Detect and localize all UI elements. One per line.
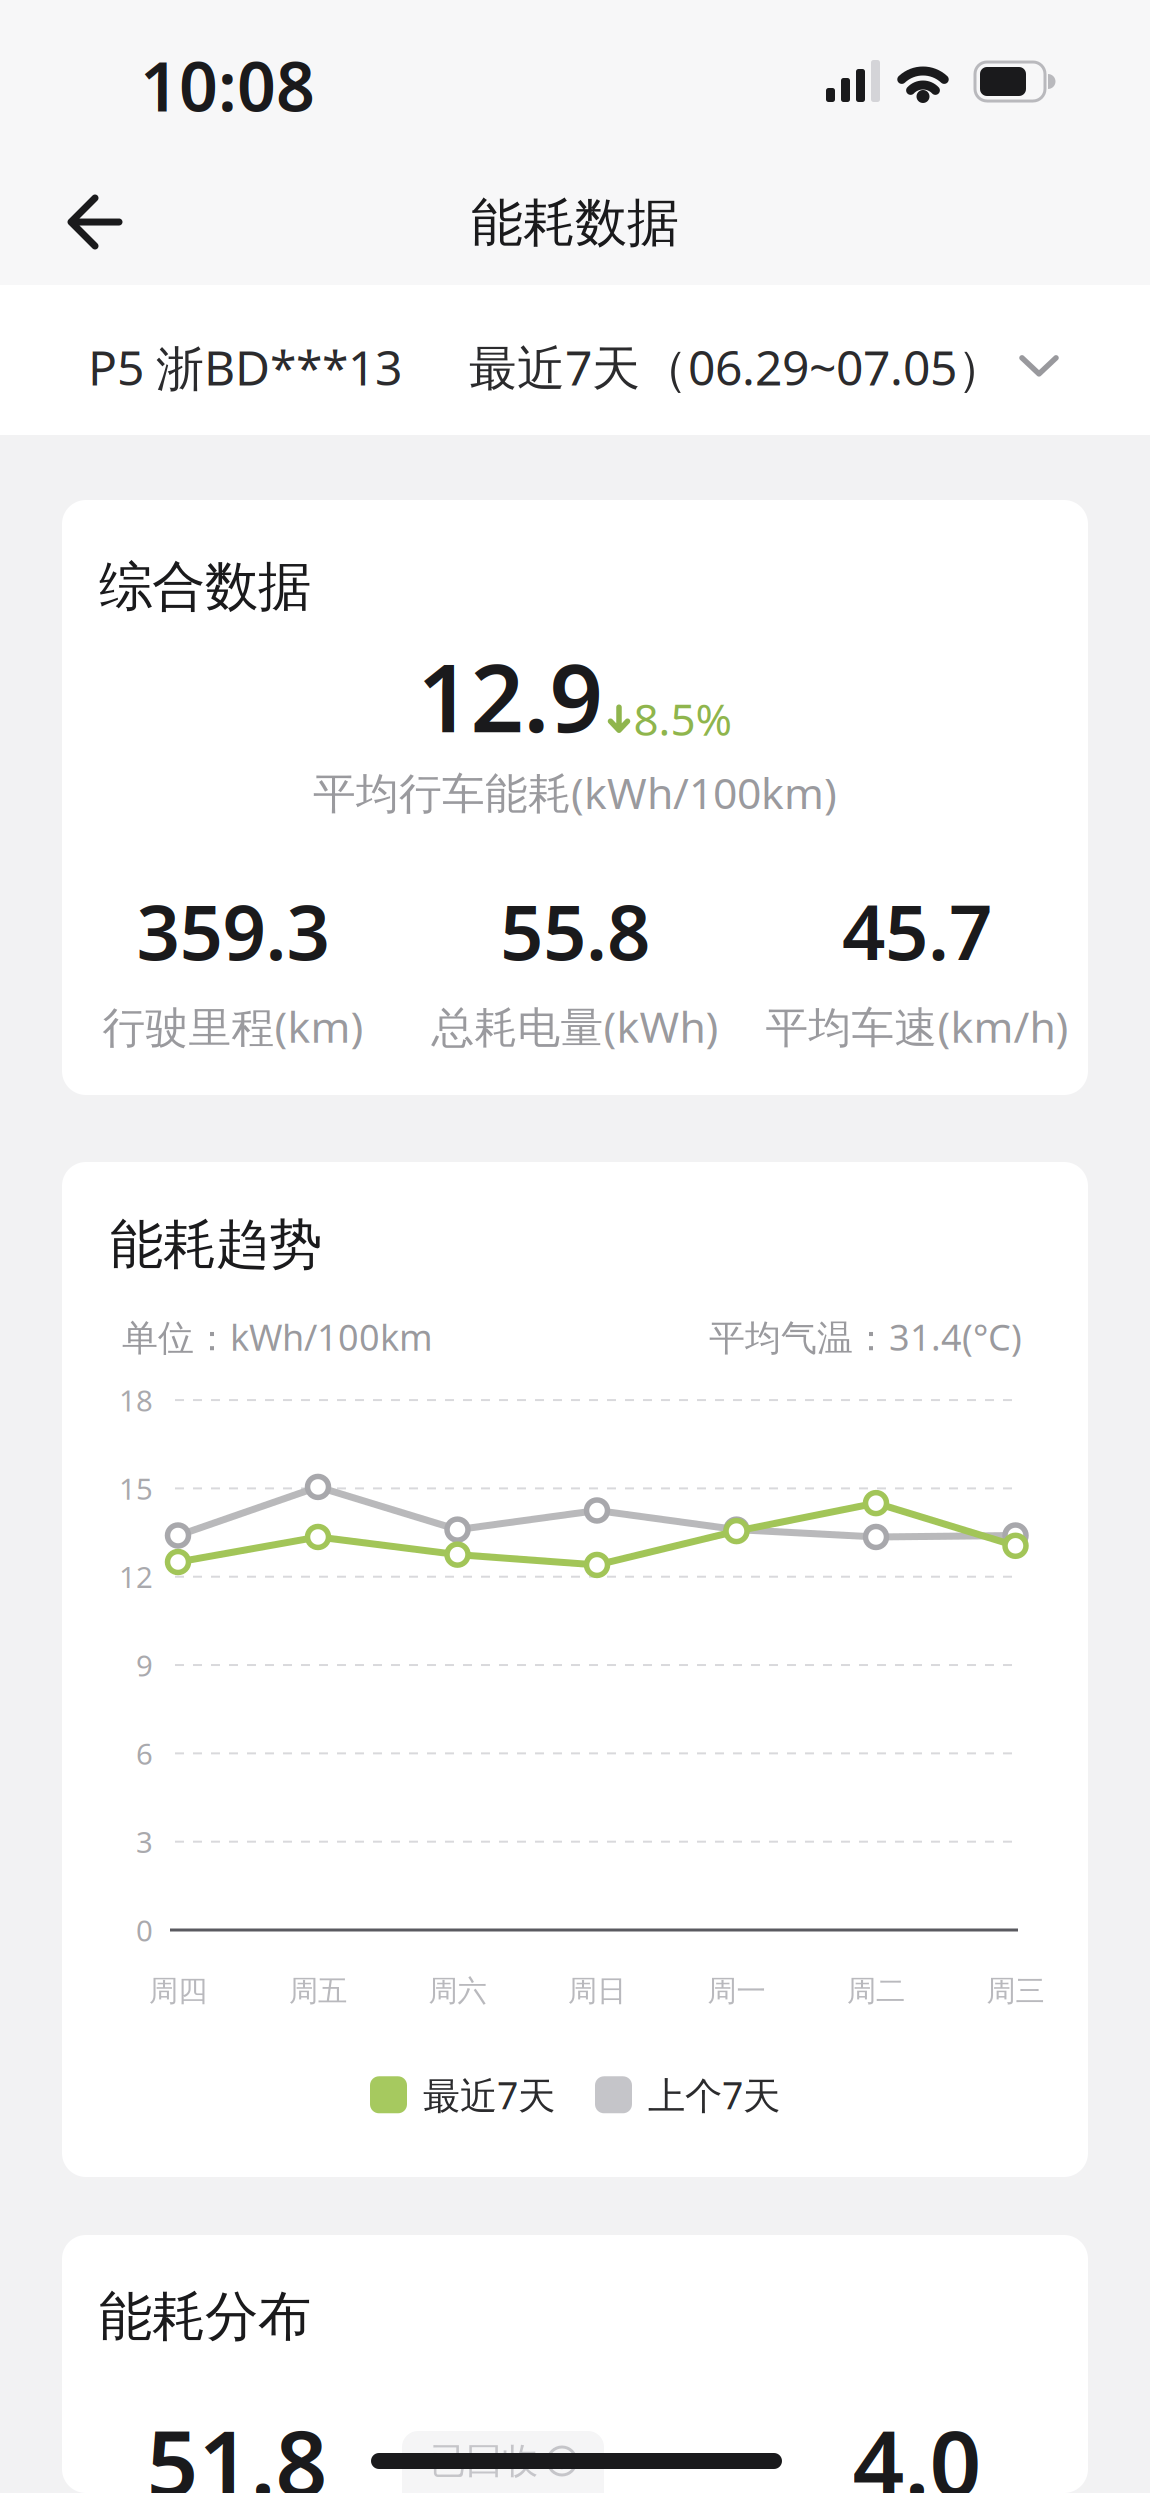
staticText: 周二 <box>847 1973 905 2009</box>
staticText: 周日 <box>568 1973 626 2009</box>
staticText: 6 <box>136 1734 153 1773</box>
staticText: 能耗数据 <box>471 191 679 255</box>
staticText: 周四 <box>149 1973 207 2009</box>
button[interactable]: P5 浙BD***13 <box>88 335 402 399</box>
staticText: 9 <box>136 1646 153 1685</box>
staticText: 最近7天 <box>423 2070 555 2120</box>
button[interactable]: 最近7天（06.29~07.05） <box>405 335 1059 399</box>
staticText: 55.8 <box>500 880 650 981</box>
staticText: P5 浙BD***13 <box>88 335 402 399</box>
staticText: 15 <box>119 1469 153 1508</box>
staticText: 12 <box>119 1557 153 1596</box>
staticText: 能耗分布 <box>99 2284 311 2349</box>
staticText: 45.7 <box>842 880 992 981</box>
staticText: 0 <box>136 1910 153 1949</box>
staticText: 周五 <box>289 1973 347 2009</box>
staticText: 最近7天（06.29~07.05） <box>469 335 1005 399</box>
staticText: 10:08 <box>140 40 315 130</box>
staticText: 51.8 <box>146 2401 327 2493</box>
staticText: 已回收 <box>430 2439 538 2483</box>
staticText: 能耗趋势 <box>110 1212 322 1277</box>
staticText: 单位：kWh/100km <box>122 1313 433 1361</box>
button[interactable]: Back <box>55 177 145 267</box>
button[interactable]: 已回收 <box>402 2431 604 2493</box>
staticText: 12.9 <box>417 634 602 758</box>
staticText: 周三 <box>986 1973 1044 2009</box>
staticText: 18 <box>119 1381 153 1420</box>
staticText: 8.5% <box>633 689 732 748</box>
staticText: 周六 <box>428 1973 486 2009</box>
staticText: 综合数据 <box>99 554 311 619</box>
staticText: 平均气温：31.4(°C) <box>709 1313 1022 1361</box>
staticText: 周一 <box>707 1973 765 2009</box>
staticText: 平均行车能耗(kWh/100km) <box>313 764 837 821</box>
staticText: 359.3 <box>136 880 329 981</box>
staticText: 4.0 <box>852 2401 981 2493</box>
staticText: 总耗电量(kWh) <box>431 998 718 1055</box>
staticText: 平均车速(km/h) <box>765 998 1068 1055</box>
staticText: 上个7天 <box>648 2070 780 2120</box>
staticText: i <box>559 2447 565 2475</box>
staticText: 行驶里程(km) <box>102 998 363 1055</box>
staticText: 3 <box>136 1822 153 1861</box>
